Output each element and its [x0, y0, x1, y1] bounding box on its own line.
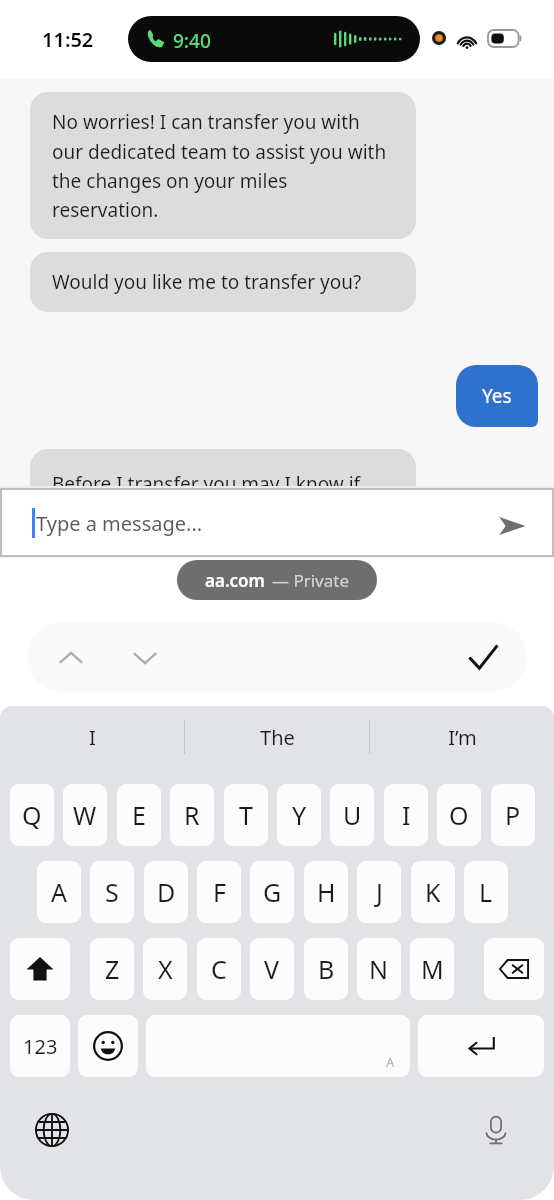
button[interactable]: U	[330, 784, 374, 846]
button[interactable]: Return	[418, 1015, 544, 1077]
staticText: H	[317, 875, 336, 909]
staticText: Would you like me to transfer you?	[52, 269, 362, 295]
button[interactable]: F	[197, 861, 241, 923]
button[interactable]: Shift	[10, 938, 70, 1000]
button[interactable]: I	[0, 706, 184, 768]
staticText: Before I transfer you may I know if	[52, 471, 361, 497]
button[interactable]: Active call 9:40	[128, 16, 420, 62]
staticText: S	[105, 875, 119, 909]
staticText: Y	[292, 798, 307, 832]
button[interactable]: Q	[10, 784, 54, 846]
button[interactable]: Would you like me to transfer you?	[30, 252, 416, 312]
staticText: U	[343, 798, 362, 832]
staticText: The	[260, 724, 295, 751]
staticText: B	[318, 952, 335, 986]
button[interactable]: S	[90, 861, 134, 923]
button[interactable]: L	[464, 861, 508, 923]
staticText: Type a message...	[36, 510, 203, 537]
staticText: No worries! I can transfer you with our …	[52, 109, 394, 222]
staticText: — Private	[272, 569, 350, 592]
button[interactable]: Numbers	[10, 1015, 70, 1077]
staticText: K	[425, 875, 441, 909]
staticText: 11:52	[42, 26, 94, 53]
button[interactable]: Previous field	[49, 636, 93, 680]
button[interactable]: X	[143, 938, 187, 1000]
button[interactable]: K	[411, 861, 455, 923]
button[interactable]: Emoji	[78, 1015, 138, 1077]
button[interactable]: J	[357, 861, 401, 923]
staticText: L	[479, 875, 493, 909]
staticText: A	[51, 875, 67, 909]
staticText: A	[386, 1053, 395, 1071]
button[interactable]: V	[250, 938, 294, 1000]
staticText: T	[239, 798, 253, 832]
staticText: F	[213, 875, 226, 909]
button[interactable]: Z	[90, 938, 134, 1000]
button[interactable]: Next field	[123, 636, 167, 680]
button[interactable]: M	[410, 938, 454, 1000]
button[interactable]: Change keyboard	[26, 1104, 78, 1156]
staticText: M	[421, 952, 444, 986]
button[interactable]: I’m	[370, 706, 554, 768]
staticText: R	[184, 798, 200, 832]
staticText: J	[376, 875, 383, 909]
button[interactable]: Done	[459, 634, 507, 682]
button[interactable]: T	[224, 784, 268, 846]
button[interactable]: P	[491, 784, 535, 846]
staticText: W	[73, 798, 97, 832]
staticText: D	[157, 875, 176, 909]
staticText: X	[158, 952, 173, 986]
staticText: Yes	[482, 383, 512, 409]
staticText: P	[505, 798, 521, 832]
button[interactable]: aa.com	[177, 560, 377, 600]
button[interactable]: O	[437, 784, 481, 846]
staticText: G	[263, 875, 282, 909]
button[interactable]: No worries! I can transfer you with our …	[30, 92, 416, 239]
staticText: N	[369, 952, 389, 986]
button[interactable]: B	[304, 938, 348, 1000]
staticText: aa.com	[205, 569, 265, 592]
staticText: 123	[23, 1033, 58, 1060]
staticText: C	[211, 952, 227, 986]
staticText: Z	[105, 952, 120, 986]
button[interactable]: Yes	[456, 365, 538, 427]
button[interactable]: Dictate	[470, 1104, 522, 1156]
button[interactable]: The	[185, 706, 369, 768]
button[interactable]: Before I transfer you may I know if	[30, 449, 416, 509]
button[interactable]: D	[144, 861, 188, 923]
button[interactable]: I	[384, 784, 428, 846]
button[interactable]: C	[197, 938, 241, 1000]
button[interactable]: Space	[146, 1015, 410, 1077]
staticText: O	[449, 798, 469, 832]
button[interactable]: A	[37, 861, 81, 923]
staticText: Q	[22, 798, 42, 832]
staticText: I’m	[448, 724, 477, 751]
staticText: E	[132, 798, 146, 832]
staticText: 9:40	[173, 28, 211, 54]
button[interactable]: E	[117, 784, 161, 846]
staticText: V	[264, 952, 280, 986]
button[interactable]: W	[63, 784, 107, 846]
button[interactable]: R	[170, 784, 214, 846]
button[interactable]: Send	[488, 502, 536, 550]
staticText: I	[402, 798, 411, 832]
button[interactable]: Y	[277, 784, 321, 846]
staticText: I	[89, 724, 96, 751]
button[interactable]: Type a message...	[2, 490, 552, 555]
button[interactable]: N	[357, 938, 401, 1000]
button[interactable]: H	[304, 861, 348, 923]
button[interactable]: Backspace	[484, 938, 544, 1000]
button[interactable]: G	[250, 861, 294, 923]
